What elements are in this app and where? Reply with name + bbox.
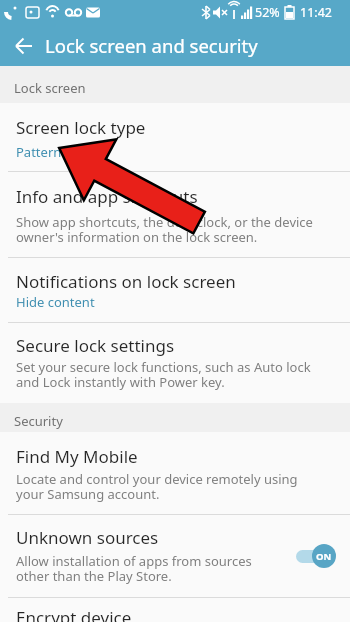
button[interactable]: Unknown sources	[0, 515, 350, 597]
staticText: Screen lock type	[16, 116, 146, 139]
staticText: Pattern	[16, 143, 62, 161]
staticText: ON	[316, 550, 332, 563]
button[interactable]: Screen lock type	[0, 103, 350, 171]
button[interactable]: Secure lock settings	[0, 323, 350, 403]
button[interactable]: Find My Mobile	[0, 432, 350, 514]
button[interactable]: ON	[296, 543, 336, 569]
staticText: Encrypt device	[16, 606, 132, 622]
staticText: Secure lock settings	[16, 334, 175, 357]
button[interactable]: Info and app shortcuts	[0, 172, 350, 257]
button[interactable]	[10, 32, 38, 60]
staticText: Set your secure lock functions, such as …	[16, 358, 311, 391]
staticText: 52%	[255, 4, 280, 21]
staticText: Lock screen	[14, 79, 86, 97]
staticText: Security	[14, 412, 63, 430]
staticText: Unknown sources	[16, 526, 159, 549]
staticText: Notifications on lock screen	[16, 270, 236, 293]
staticText: Lock screen and security	[45, 33, 258, 58]
staticText: Locate and control your device remotely …	[16, 470, 298, 503]
staticText: Allow installation of apps from sources …	[16, 552, 252, 585]
staticText: Info and app shortcuts	[16, 185, 198, 208]
button[interactable]: Notifications on lock screen	[0, 258, 350, 322]
staticText: Hide content	[16, 293, 95, 311]
staticText: 11:42	[300, 4, 332, 21]
staticText: Show app shortcuts, the dual clock, or t…	[16, 213, 313, 246]
staticText: Find My Mobile	[16, 445, 138, 468]
button[interactable]: Encrypt device	[0, 598, 350, 622]
